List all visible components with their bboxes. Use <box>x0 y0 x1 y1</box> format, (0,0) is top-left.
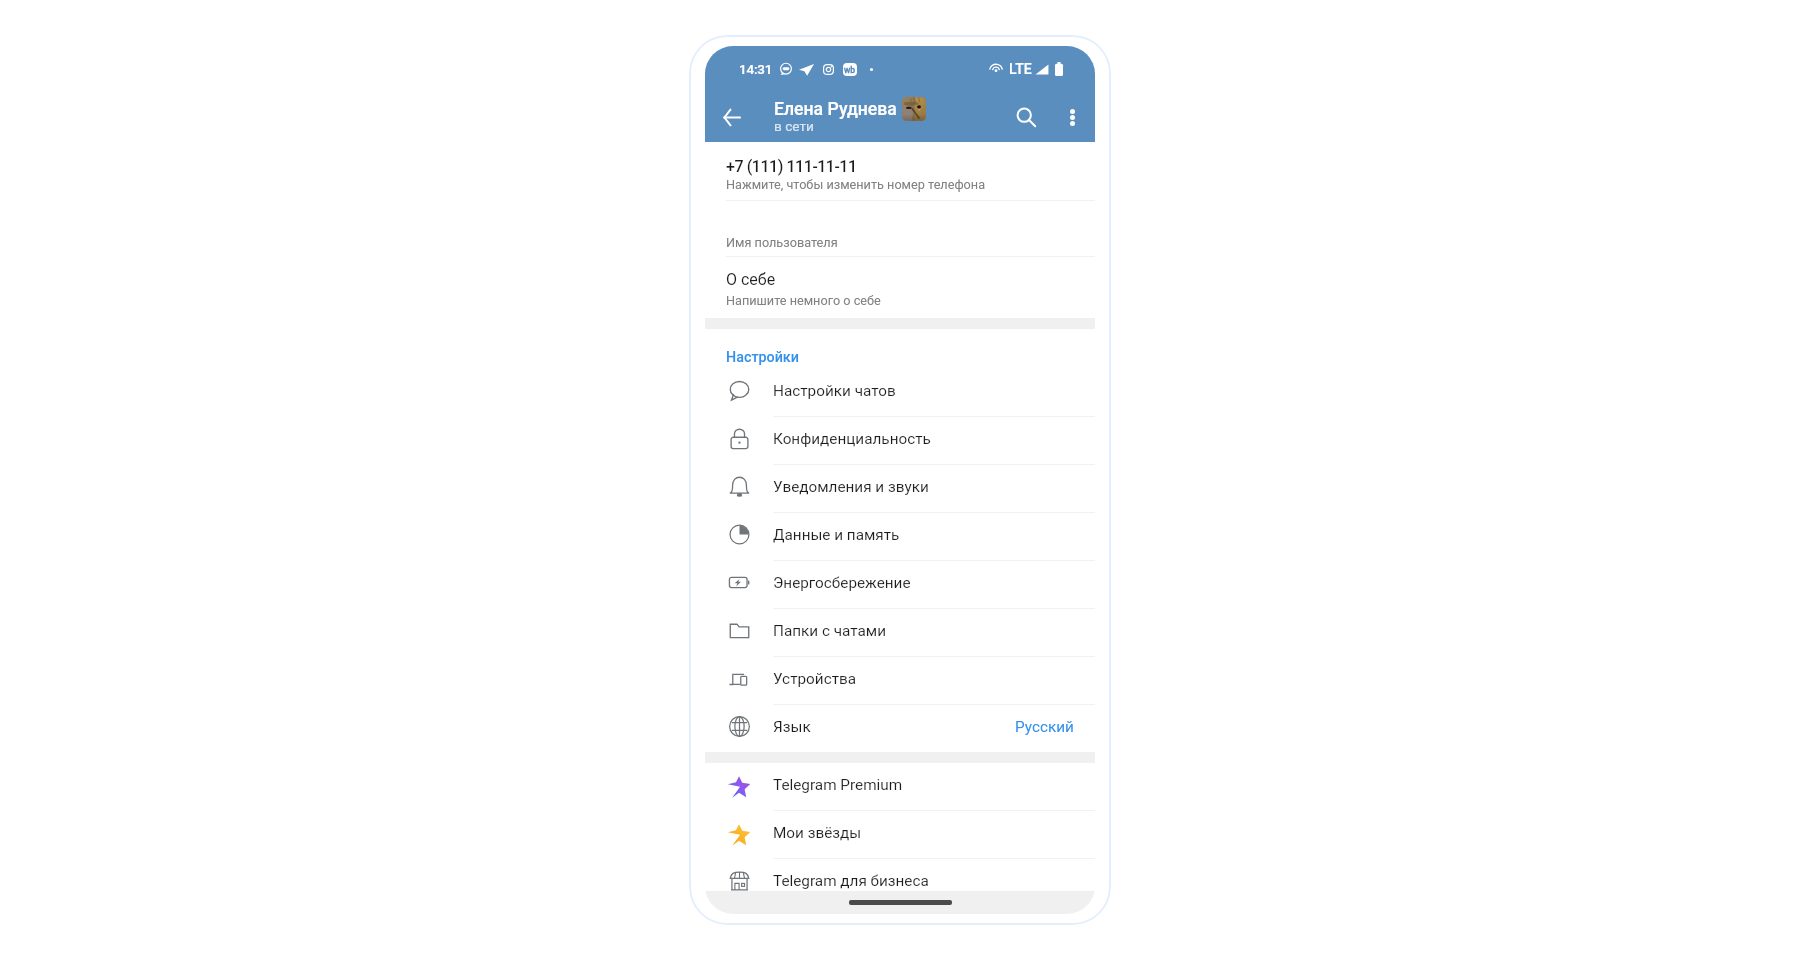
staticText: в сети <box>774 118 814 134</box>
button[interactable]: Папки с чатами <box>705 609 1095 656</box>
button[interactable]: Telegram для бизнеса <box>705 859 1095 906</box>
button[interactable]: Back <box>705 92 757 142</box>
staticText: О себе <box>726 270 776 289</box>
staticText: Устройства <box>773 670 1095 688</box>
button[interactable]: +7 (111) 111-11-11 <box>705 142 1095 200</box>
staticText: Нажмите, чтобы изменить номер телефона <box>726 177 986 192</box>
staticText: Настройки <box>726 349 800 366</box>
button[interactable]: Telegram Premium <box>705 763 1095 810</box>
staticText: Telegram Premium <box>773 776 1095 794</box>
staticText: Имя пользователя <box>726 235 838 250</box>
button[interactable]: Язык <box>705 705 1095 752</box>
button[interactable]: More options <box>1050 92 1095 142</box>
staticText: Настройки чатов <box>773 382 1095 400</box>
staticText: Уведомления и звуки <box>773 478 1095 496</box>
staticText: Напишите немного о себе <box>726 293 881 308</box>
button[interactable]: Настройки чатов <box>705 369 1095 416</box>
button[interactable]: Данные и память <box>705 513 1095 560</box>
staticText: wb <box>844 65 856 75</box>
button[interactable]: Имя пользователя <box>705 201 1095 256</box>
staticText: Энергосбережение <box>773 574 1095 592</box>
staticText: +7 (111) 111-11-11 <box>726 157 857 176</box>
staticText: Telegram для бизнеса <box>773 872 1095 890</box>
staticText: Елена Руднева <box>774 99 897 120</box>
staticText: Папки с чатами <box>773 622 1095 640</box>
button[interactable]: Мои звёзды <box>705 811 1095 858</box>
staticText: LTE <box>1009 61 1032 77</box>
button[interactable]: О себе <box>705 257 1095 318</box>
staticText: Данные и память <box>773 526 1095 544</box>
staticText: 14:31 <box>739 61 773 77</box>
staticText: Язык <box>773 718 1015 736</box>
staticText: Мои звёзды <box>773 824 1095 842</box>
staticText: Конфиденциальность <box>773 430 1095 448</box>
staticText: Русский <box>1015 718 1074 736</box>
button[interactable]: Конфиденциальность <box>705 417 1095 464</box>
button[interactable]: Энергосбережение <box>705 561 1095 608</box>
button[interactable]: Уведомления и звуки <box>705 465 1095 512</box>
button[interactable]: Елена Руднева <box>774 92 1002 142</box>
button[interactable]: Search <box>1002 93 1050 141</box>
button[interactable]: Устройства <box>705 657 1095 704</box>
